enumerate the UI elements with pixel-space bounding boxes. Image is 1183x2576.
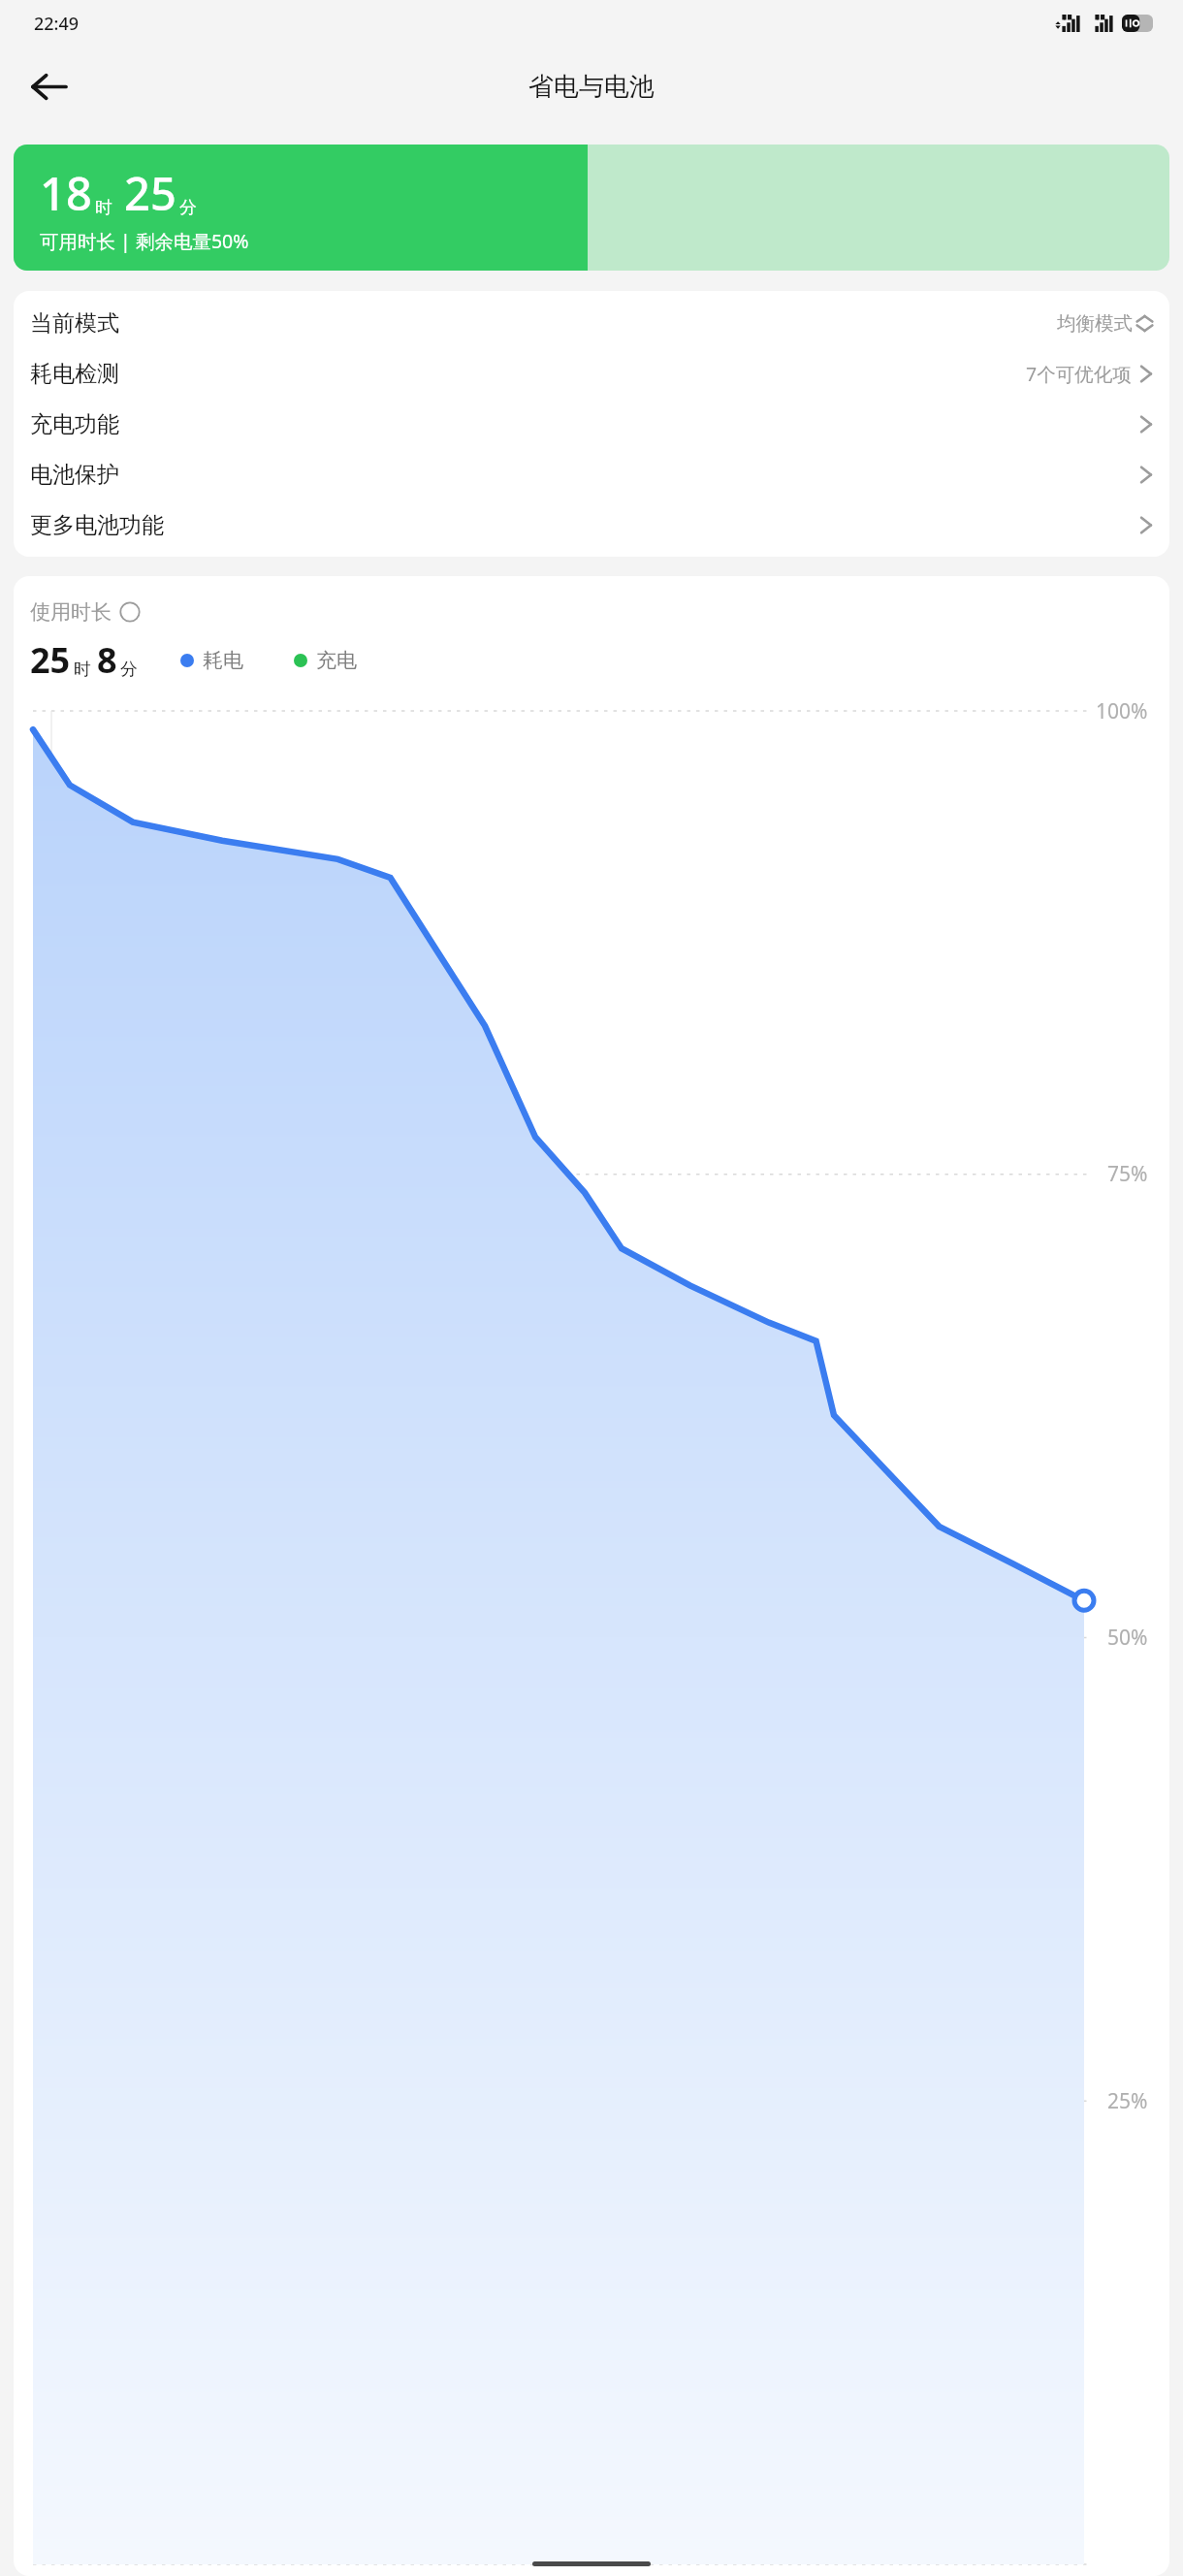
staticText: 50%: [1107, 1624, 1148, 1652]
staticText: 7个可优化项: [1026, 361, 1132, 387]
staticText: 100%: [1096, 697, 1148, 725]
button[interactable]: 当前模式: [14, 298, 1169, 348]
staticText: 耗电检测: [30, 360, 119, 388]
button[interactable]: 充电功能: [14, 399, 1169, 449]
staticText: 耗电: [203, 648, 243, 673]
staticText: 可用时长 | 剩余电量50%: [40, 228, 249, 254]
staticText: 均衡模式: [1057, 311, 1133, 336]
staticText: 更多电池功能: [30, 511, 164, 539]
button[interactable]: 使用时长: [30, 599, 141, 625]
staticText: 充电功能: [30, 410, 119, 438]
button[interactable]: 耗电检测: [14, 348, 1169, 399]
staticText: 使用时长: [30, 599, 112, 625]
staticText: 22:49: [34, 12, 80, 36]
other: Help: [119, 601, 141, 623]
staticText: 当前模式: [30, 309, 119, 338]
staticText: 75%: [1107, 1160, 1148, 1188]
staticText: 电池保护: [30, 461, 119, 489]
staticText: 充电: [316, 648, 357, 673]
staticText: 25%: [1107, 2087, 1148, 2115]
staticText: 时: [95, 197, 112, 219]
button[interactable]: 18: [14, 145, 1169, 271]
button[interactable]: 电池保护: [14, 449, 1169, 499]
button[interactable]: 耗电: [180, 648, 243, 673]
staticText: 18: [40, 162, 92, 224]
staticText: 分: [179, 197, 197, 219]
staticText: 分: [120, 659, 138, 681]
staticText: 时: [74, 659, 91, 681]
button[interactable]: 更多电池功能: [14, 499, 1169, 550]
button[interactable]: Back: [19, 57, 78, 115]
staticText: 25: [30, 636, 71, 684]
staticText: 省电与电池: [528, 71, 655, 103]
button[interactable]: 充电: [294, 648, 357, 673]
staticText: 25: [124, 162, 176, 224]
staticText: 8: [97, 636, 117, 684]
